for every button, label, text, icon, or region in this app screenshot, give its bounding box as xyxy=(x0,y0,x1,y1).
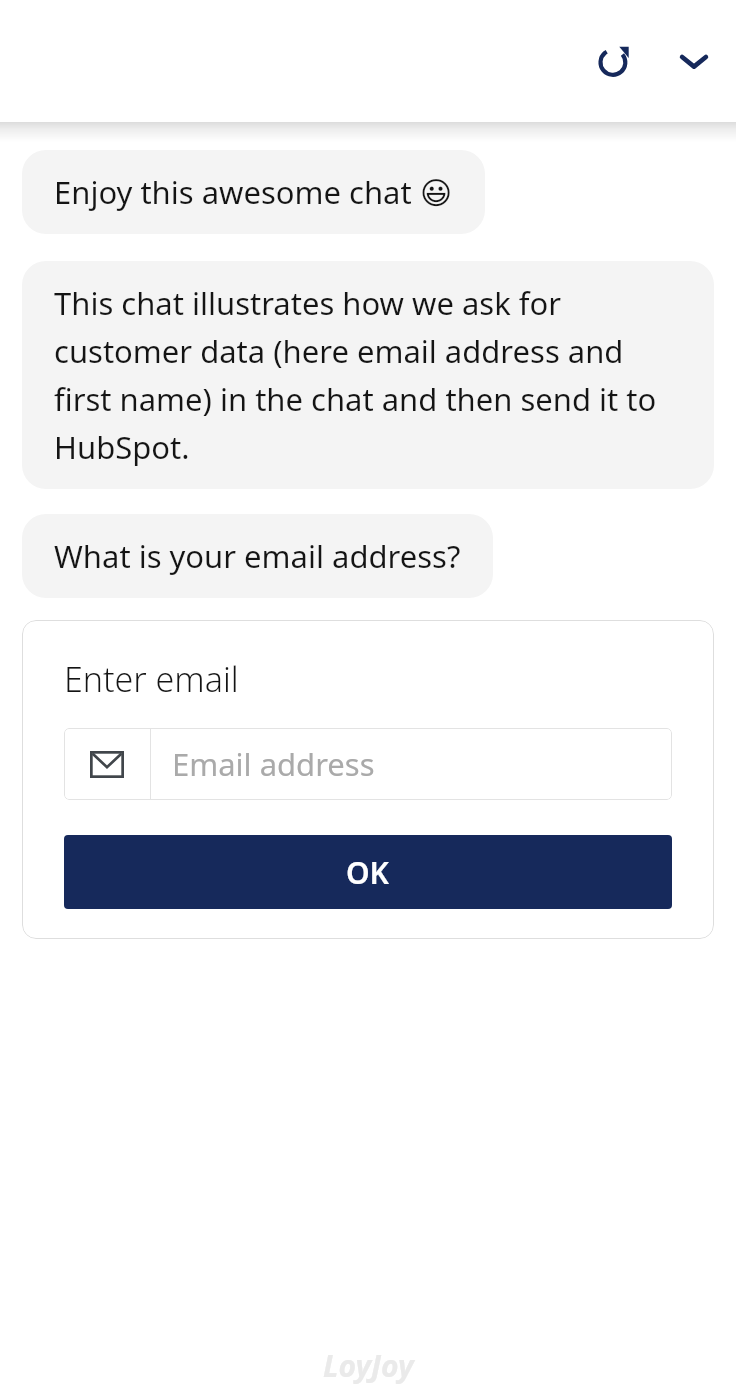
staticText: What is your email address? xyxy=(54,535,461,577)
staticText: Enjoy this awesome chat 😃 xyxy=(54,171,453,213)
button[interactable]: This chat illustrates how we ask for cus… xyxy=(22,261,714,489)
staticText: Enter email xyxy=(64,656,239,702)
button[interactable]: Enjoy this awesome chat 😃 xyxy=(22,150,485,234)
staticText: Email address xyxy=(172,743,375,785)
staticText: LoyJoy xyxy=(323,1345,414,1386)
staticText: OK xyxy=(346,852,390,893)
button[interactable]: What is your email address? xyxy=(22,514,493,598)
button[interactable]: OK xyxy=(64,835,672,909)
button[interactable]: Email address xyxy=(64,728,672,800)
button[interactable]: Restart chat xyxy=(583,30,645,92)
staticText: This chat illustrates how we ask for cus… xyxy=(54,282,682,468)
button[interactable]: Collapse chat xyxy=(663,30,725,92)
